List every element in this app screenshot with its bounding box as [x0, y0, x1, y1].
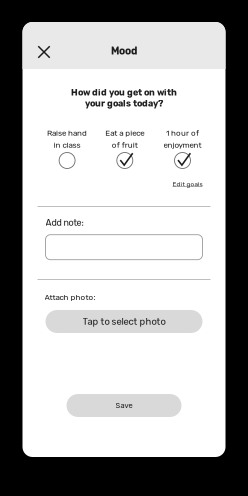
staticText: in class	[54, 140, 81, 150]
staticText: How did you get on with	[71, 87, 177, 98]
staticText: Tap to select photo	[82, 316, 165, 327]
staticText: Attach photo:	[44, 292, 95, 302]
button[interactable]: Tap to select photo	[45, 310, 202, 333]
staticText: Raise hand	[47, 128, 87, 138]
button[interactable]: Eat a piece	[96, 127, 154, 168]
staticText: Eat a piece	[105, 128, 144, 138]
button[interactable]: 1 hour of	[153, 127, 211, 168]
button[interactable]: Close	[32, 40, 56, 64]
staticText: Add note:	[45, 217, 83, 228]
staticText: 1 hour of	[166, 128, 199, 138]
staticText: Save	[115, 401, 132, 410]
staticText: of fruit	[112, 140, 138, 150]
button[interactable]: Raise hand	[38, 127, 96, 168]
staticText: enjoyment	[163, 140, 201, 150]
staticText: Edit goals	[172, 180, 202, 188]
staticText: Mood	[111, 45, 137, 57]
button[interactable]: Save	[66, 394, 181, 417]
button[interactable]: Edit goals	[172, 179, 202, 189]
staticText: your goals today?	[85, 98, 163, 109]
